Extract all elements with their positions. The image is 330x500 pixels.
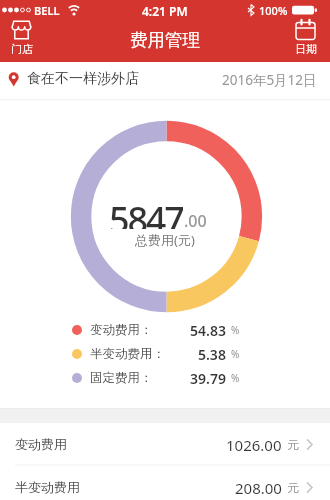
staticText: .00 [184,210,207,228]
staticText: 2016年5月12日 [222,71,317,87]
staticText: 5847 [109,195,183,229]
staticText: 费用管理 [130,29,200,49]
staticText: 食在不一样涉外店 [27,70,139,88]
staticText: 变动费用： [90,322,153,338]
staticText: 半变动费用 [15,479,80,495]
staticText: 1026.00 [226,435,282,453]
staticText: 元 [287,480,299,495]
staticText: 元 [287,437,299,452]
staticText: % [231,347,240,361]
staticText: 208.00 [235,478,282,496]
staticText: % [231,323,240,337]
staticText: 5.38 [198,345,226,363]
staticText: 变动费用 [15,436,67,452]
staticText: 日期 [295,42,317,56]
staticText: 4:21 PM [142,3,188,17]
staticText: 半变动费用： [90,346,165,362]
staticText: BELL [34,3,60,17]
staticText: 总费用(元) [135,231,195,248]
staticText: 100% [259,3,288,17]
staticText: 固定费用： [90,370,153,386]
staticText: % [231,371,240,385]
staticText: 39.79 [190,369,226,387]
staticText: 门店 [11,42,33,56]
staticText: 54.83 [190,321,226,339]
